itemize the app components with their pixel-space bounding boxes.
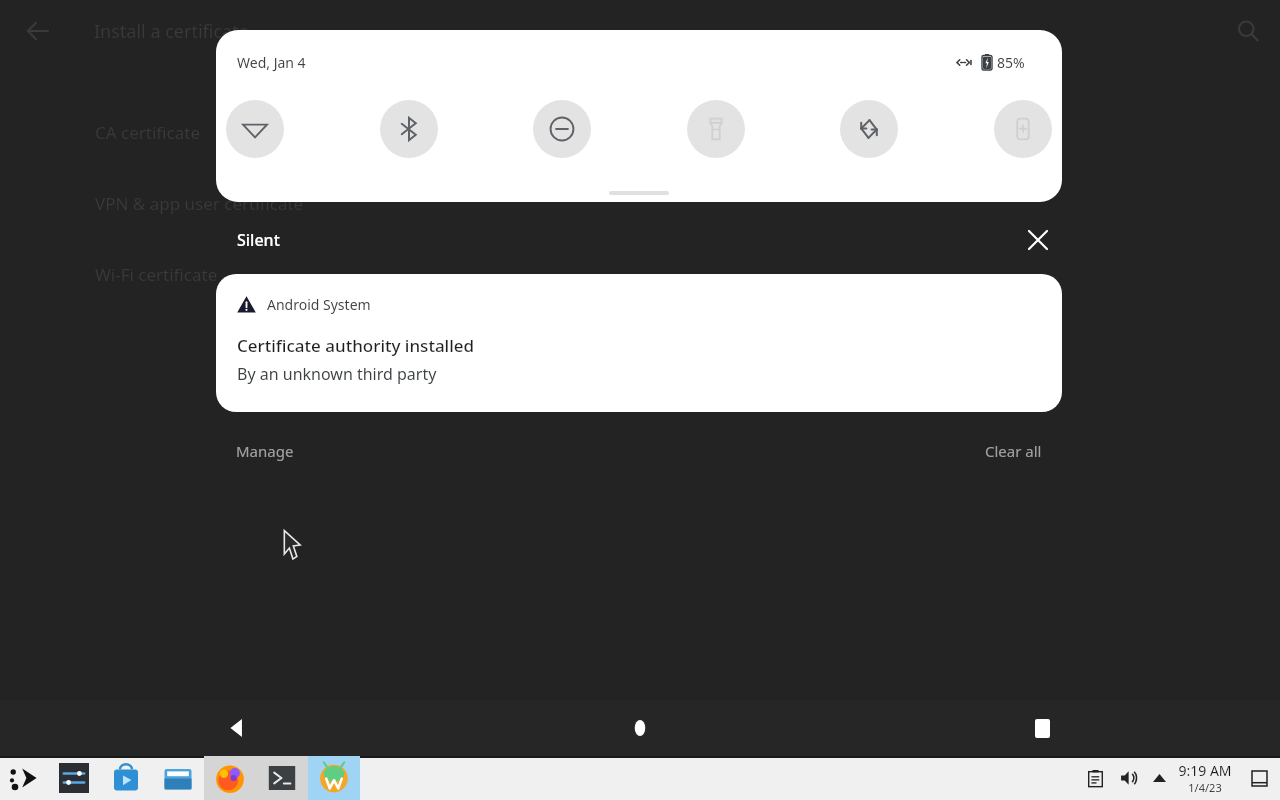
staticText: Wed, Jan 4 [237, 53, 306, 72]
button[interactable]: Taskbar app [48, 756, 100, 800]
staticText: Install a certificate [94, 19, 249, 44]
button[interactable]: Back [14, 7, 62, 55]
button[interactable]: Android System [216, 274, 1062, 412]
button[interactable]: Manage [216, 433, 314, 469]
button[interactable]: Battery saver [994, 100, 1052, 158]
button[interactable]: CA certificate [0, 107, 1280, 157]
staticText: Manage [236, 441, 294, 461]
button[interactable]: Taskbar app [100, 756, 152, 800]
button[interactable]: Taskbar app [0, 756, 48, 800]
button[interactable]: Taskbar app [152, 756, 204, 800]
staticText: Clear all [985, 441, 1042, 461]
staticText: Silent [237, 229, 280, 251]
button[interactable]: 9:19 AM [1178, 761, 1232, 795]
staticText: CA certificate [95, 121, 200, 144]
staticText: 1/4/23 [1188, 780, 1222, 795]
staticText: Certificate authority installed [237, 334, 475, 357]
button[interactable]: Home [612, 700, 668, 756]
staticText: 9:19 AM [1178, 761, 1232, 780]
button[interactable]: Wi-Fi [226, 100, 284, 158]
button[interactable]: VPN & app user certificate [0, 178, 1280, 228]
button[interactable]: Recent apps [1014, 700, 1070, 756]
button[interactable]: Close shade [1014, 216, 1062, 264]
button[interactable]: Back [210, 700, 266, 756]
button[interactable]: Auto-rotate [840, 100, 898, 158]
staticText: 85% [997, 53, 1025, 72]
button[interactable]: Do not disturb [533, 100, 591, 158]
button[interactable]: Running app [204, 756, 256, 800]
staticText: VPN & app user certificate [95, 192, 304, 215]
button[interactable]: Wi-Fi certificate [0, 249, 1280, 299]
button[interactable]: Clipboard [1078, 761, 1112, 795]
button[interactable]: Clear all [965, 433, 1062, 469]
button[interactable]: Running app [308, 756, 360, 800]
button[interactable]: Show desktop [1244, 763, 1274, 793]
staticText: Android System [267, 295, 371, 314]
button[interactable]: Show hidden icons [1146, 765, 1172, 791]
button[interactable]: Flashlight [687, 100, 745, 158]
button[interactable]: Running app [256, 756, 308, 800]
button[interactable]: Bluetooth [380, 100, 438, 158]
staticText: Wi-Fi certificate [95, 263, 218, 286]
button[interactable]: Search [1224, 7, 1272, 55]
button[interactable]: Volume [1112, 761, 1146, 795]
staticText: By an unknown third party [237, 363, 437, 385]
